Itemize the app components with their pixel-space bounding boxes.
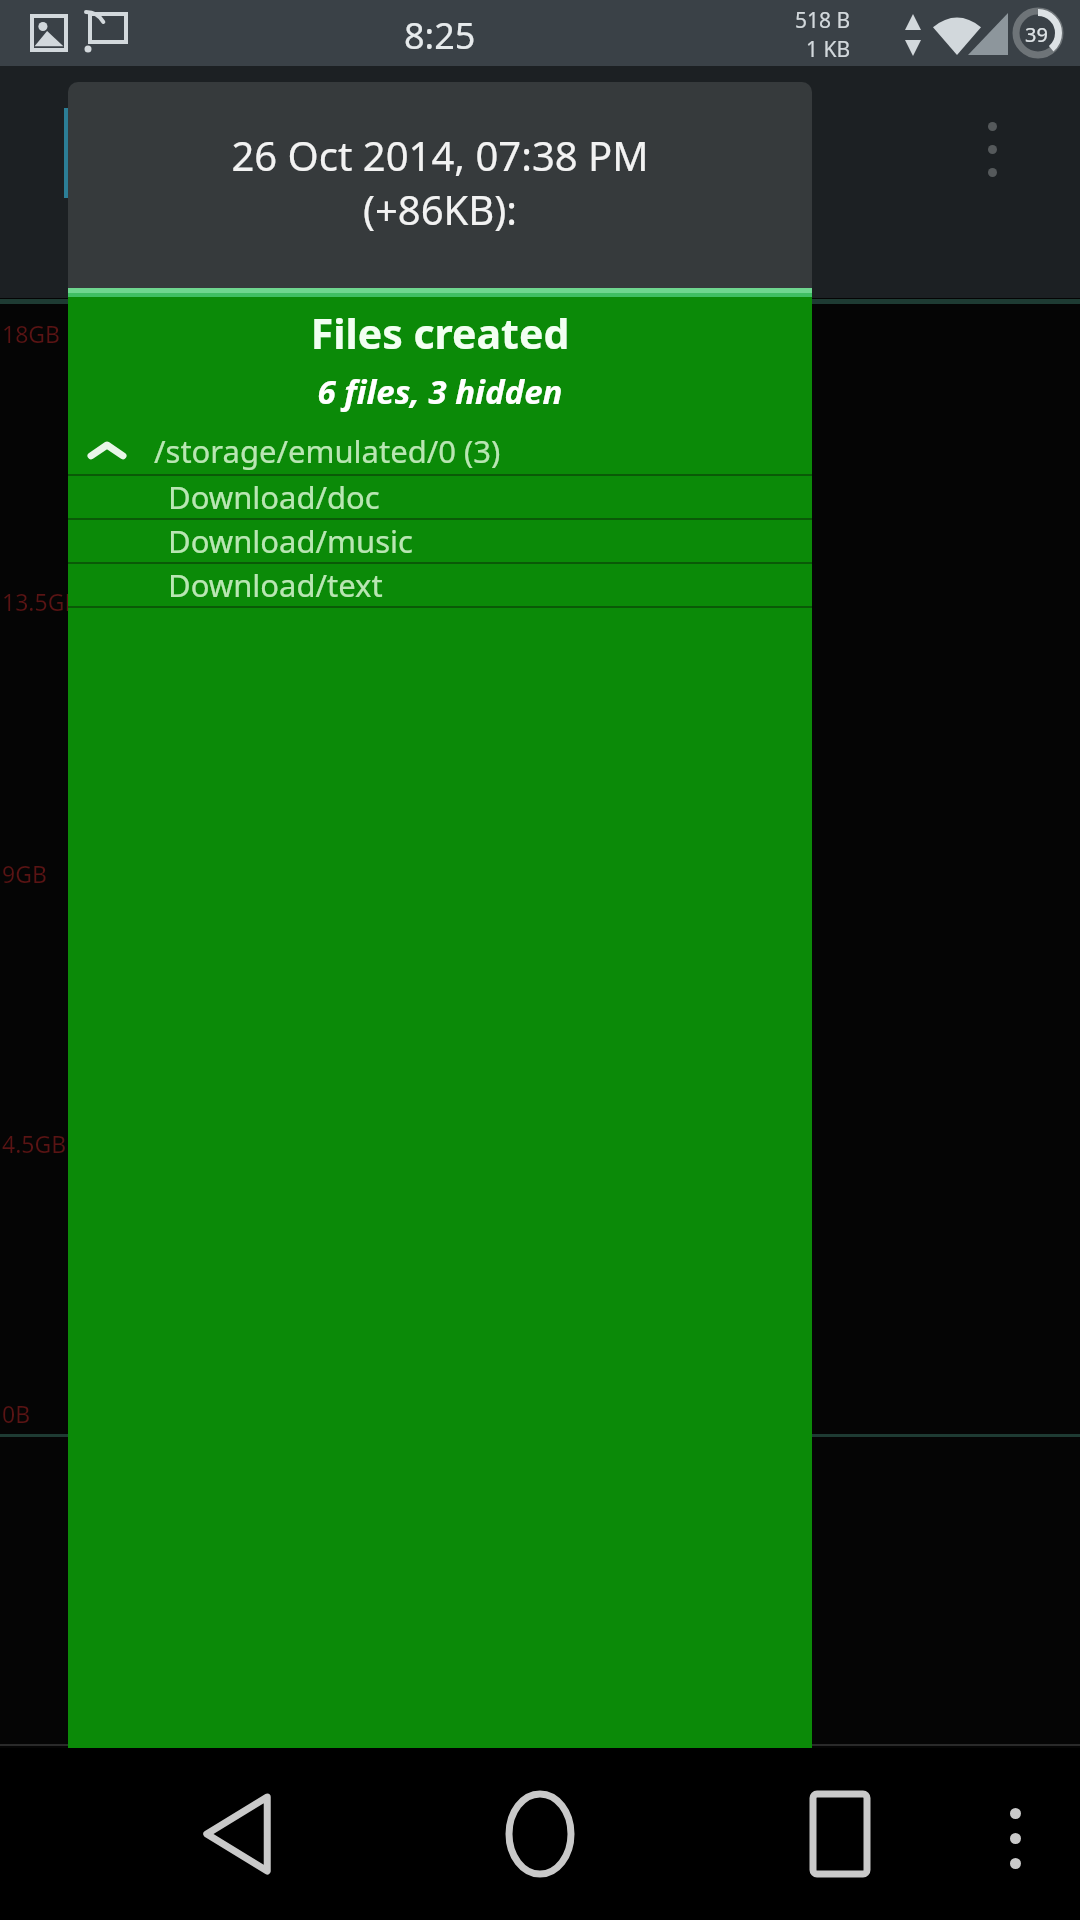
- staticText: 518 B: [795, 6, 851, 35]
- staticText: 26 Oct 2014, 07:38 PM (+86KB):: [78, 128, 802, 236]
- staticText: 39: [1025, 21, 1048, 48]
- staticText: /storage/emulated/0 (3): [154, 430, 501, 472]
- button[interactable]: More options: [988, 122, 997, 177]
- staticText: 1 KB: [806, 35, 851, 64]
- button[interactable]: Home: [480, 1774, 600, 1894]
- staticText: Download/music: [168, 520, 413, 562]
- staticText: 4.5GB: [2, 1128, 67, 1159]
- staticText: 0B: [2, 1398, 31, 1429]
- staticText: 9GB: [2, 858, 47, 889]
- button[interactable]: Download/music: [68, 520, 812, 562]
- staticText: Download/doc: [168, 476, 380, 518]
- staticText: 18GB: [2, 318, 61, 349]
- button[interactable]: Back: [177, 1774, 297, 1894]
- staticText: Download/text: [168, 564, 383, 606]
- staticText: Files created: [68, 305, 812, 361]
- button[interactable]: /storage/emulated/0 (3): [68, 428, 812, 474]
- staticText: 6 files, 3 hidden: [68, 369, 812, 414]
- button[interactable]: More options: [1010, 1808, 1021, 1869]
- staticText: 13.5GB: [2, 586, 80, 617]
- button[interactable]: Download/text: [68, 564, 812, 606]
- button[interactable]: Recents: [780, 1774, 900, 1894]
- staticText: 8:25: [404, 11, 476, 60]
- button[interactable]: Download/doc: [68, 476, 812, 518]
